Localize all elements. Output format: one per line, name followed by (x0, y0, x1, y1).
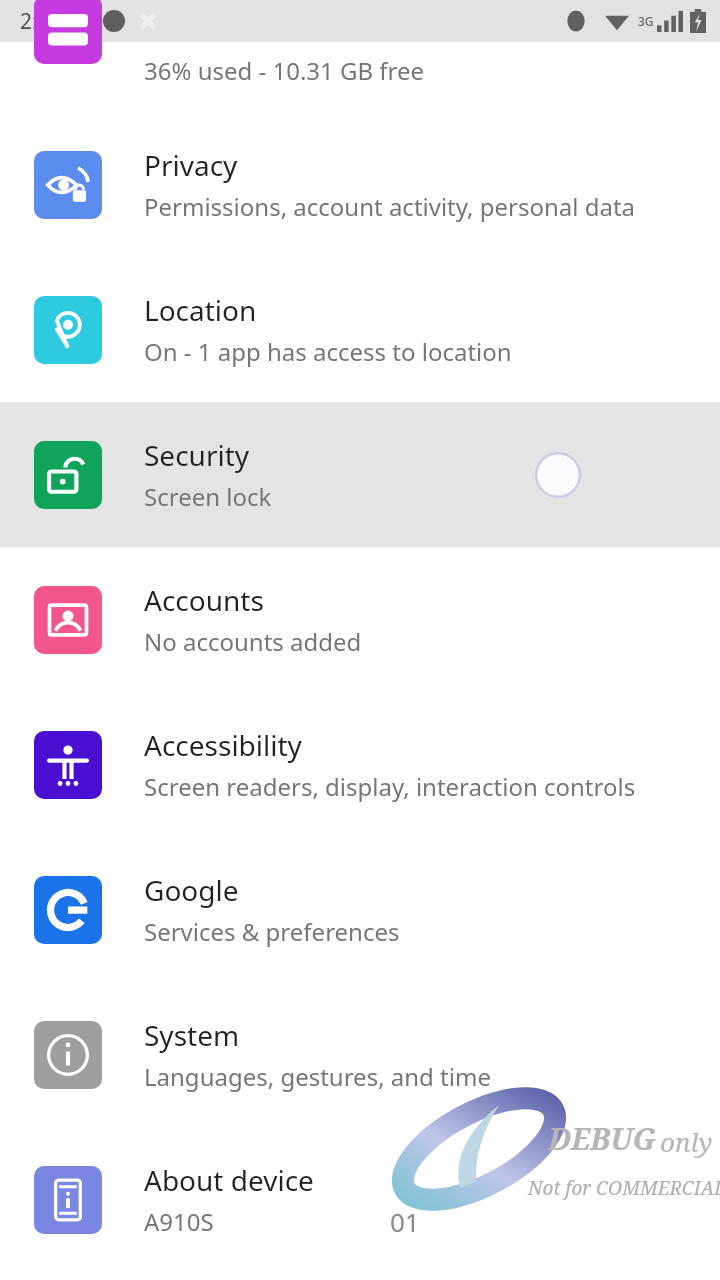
staticText: Not for COMMERCIAL (528, 1175, 720, 1201)
staticText: No accounts added (144, 625, 362, 658)
button[interactable]: Accounts (0, 547, 720, 692)
staticText: 2:37 (20, 7, 62, 36)
staticText: Screen lock (144, 480, 272, 513)
staticText: 01 (390, 1204, 420, 1239)
staticText: System (144, 1016, 240, 1054)
button[interactable]: Location (0, 257, 720, 402)
button[interactable]: 36% used - 10.31 GB free (0, 42, 720, 112)
button[interactable]: Google (0, 837, 720, 982)
staticText: Google (144, 871, 239, 909)
staticText: Permissions, account activity, personal … (144, 190, 636, 223)
button[interactable]: Privacy (0, 112, 720, 257)
button[interactable]: Security (0, 402, 720, 547)
staticText: Services & preferences (144, 915, 400, 948)
staticText: Privacy (144, 146, 238, 184)
staticText: only (660, 1124, 713, 1159)
button[interactable]: Accessibility (0, 692, 720, 837)
button[interactable]: System (0, 982, 720, 1127)
button[interactable]: About device (0, 1127, 720, 1272)
staticText: Accounts (144, 581, 264, 619)
staticText: Location (144, 291, 257, 329)
staticText: Screen readers, display, interaction con… (144, 770, 636, 803)
staticText: 36% used - 10.31 GB free (144, 54, 425, 87)
staticText: 3G (638, 13, 654, 29)
staticText: On - 1 app has access to location (144, 335, 512, 368)
staticText: AM (67, 12, 89, 31)
staticText: A910S (144, 1205, 214, 1238)
staticText: Languages, gestures, and time (144, 1060, 491, 1093)
staticText: DEBUG (548, 1118, 657, 1159)
staticText: About device (144, 1161, 314, 1199)
staticText: Accessibility (144, 726, 302, 764)
staticText: Security (144, 436, 250, 474)
